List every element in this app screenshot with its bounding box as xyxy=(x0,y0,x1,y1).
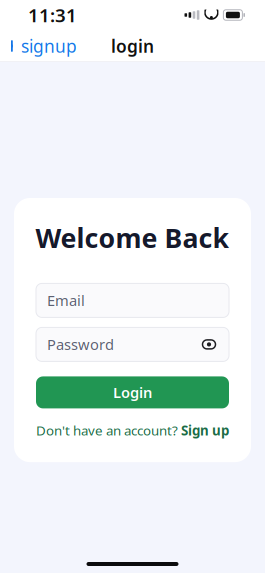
button[interactable]: signup xyxy=(0,28,83,63)
button[interactable]: Don't have an account? xyxy=(30,416,235,444)
staticText: login xyxy=(111,34,154,57)
staticText: 11:31 xyxy=(28,3,77,27)
button[interactable]: Login xyxy=(36,376,229,408)
staticText: Login xyxy=(113,383,152,402)
button[interactable]: Show password xyxy=(200,335,218,354)
staticText: Don't have an account? xyxy=(36,421,178,439)
staticText: Welcome Back xyxy=(35,220,229,255)
staticText: Password xyxy=(47,335,114,354)
staticText: Sign up xyxy=(181,421,229,439)
staticText: signup xyxy=(21,34,77,57)
staticText: Email xyxy=(47,291,85,310)
